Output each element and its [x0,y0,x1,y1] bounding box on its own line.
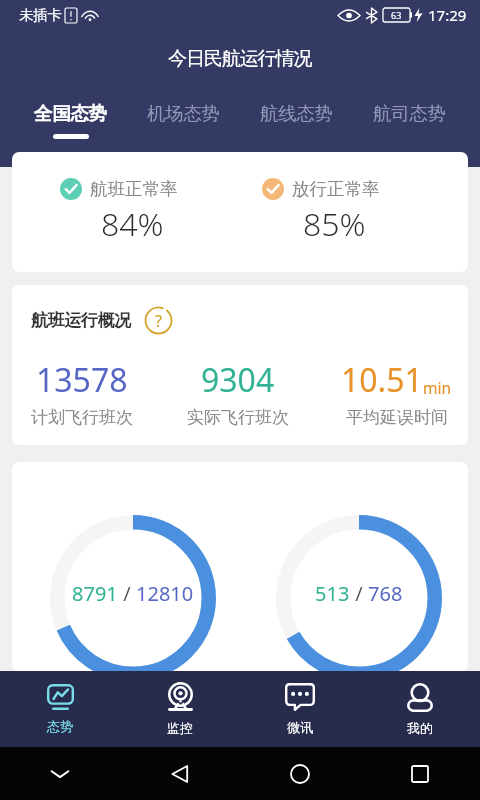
staticText: 未插卡 [19,6,62,24]
staticText: 实际飞行班次 [187,407,289,428]
staticText: ? [155,310,162,332]
staticText: 航班正常率 [90,178,178,200]
button[interactable]: 13578 [12,358,162,428]
staticText: 全国态势 [34,102,107,125]
button[interactable]: 8791 [50,515,216,671]
button[interactable]: 513 [276,515,442,671]
staticText: 今日民航运行情况 [168,47,312,71]
button[interactable]: 航线态势 [240,102,353,152]
staticText: 态势 [47,718,73,734]
staticText: 航线态势 [260,102,333,125]
staticText: 我的 [407,720,433,736]
button[interactable]: 态势 [0,671,120,747]
staticText: 微讯 [287,719,313,735]
button[interactable]: 监控 [120,671,240,747]
staticText: 放行正常率 [292,178,380,200]
button[interactable]: 我的 [360,671,480,747]
button[interactable]: Recent apps [360,747,480,800]
button[interactable]: Home [240,747,360,800]
staticText: / [118,580,136,607]
staticText: 监控 [167,720,193,736]
button[interactable]: 全国态势 [14,102,127,152]
staticText: 航班运行概况 [31,310,131,331]
staticText: 513 [315,580,350,607]
button[interactable]: 放行正常率 [262,178,380,248]
staticText: 平均延误时间 [346,407,448,428]
button[interactable]: 航班正常率 [60,178,178,248]
button[interactable]: 航司态势 [353,102,466,152]
staticText: 12810 [136,580,194,607]
button[interactable]: 机场态势 [127,102,240,152]
button[interactable]: 10.51 [316,358,468,428]
button[interactable]: 微讯 [240,671,360,747]
staticText: 航司态势 [373,102,446,125]
button[interactable]: Back [120,747,240,800]
staticText: 13578 [36,358,128,402]
staticText: min [423,377,452,398]
staticText: 机场态势 [147,102,220,125]
staticText: 17:29 [428,5,467,25]
staticText: 计划飞行班次 [31,407,133,428]
button[interactable]: Hide keyboard [0,747,120,800]
button[interactable]: 9304 [158,358,318,428]
staticText: 768 [368,580,403,607]
staticText: 84% [101,202,164,246]
staticText: 9304 [201,358,275,402]
staticText: 63 [391,9,402,21]
staticText: 10.51 [341,358,423,402]
staticText: / [350,580,368,607]
staticText: 85% [303,202,366,246]
staticText: 8791 [72,580,118,607]
